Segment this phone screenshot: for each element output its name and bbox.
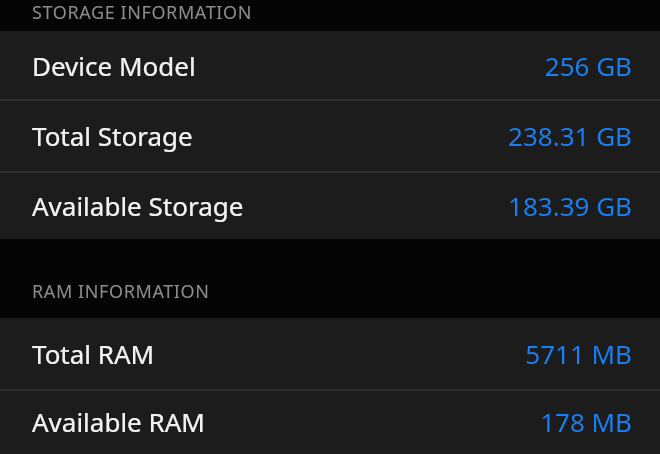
staticText: Available RAM <box>32 404 205 439</box>
staticText: RAM INFORMATION <box>32 279 210 304</box>
staticText: 178 MB <box>540 404 632 439</box>
staticText: Total RAM <box>32 336 155 371</box>
staticText: Device Model <box>32 48 196 83</box>
button[interactable]: Device Model <box>0 31 660 99</box>
staticText: 183.39 GB <box>508 188 632 223</box>
button[interactable]: Available RAM <box>0 389 660 454</box>
button[interactable]: Total RAM <box>0 318 660 389</box>
staticText: 238.31 GB <box>508 118 632 153</box>
staticText: Available Storage <box>32 188 244 223</box>
staticText: STORAGE INFORMATION <box>32 0 252 24</box>
button[interactable]: Available Storage <box>0 171 660 239</box>
staticText: 5711 MB <box>525 336 632 371</box>
staticText: Total Storage <box>32 118 193 153</box>
button[interactable]: Total Storage <box>0 99 660 171</box>
staticText: 256 GB <box>544 48 632 83</box>
